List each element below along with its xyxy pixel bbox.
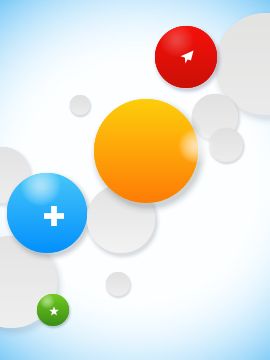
button[interactable]: Favorite <box>0 0 270 360</box>
button[interactable]: Send <box>0 0 270 360</box>
button[interactable]: Add <box>0 0 270 360</box>
